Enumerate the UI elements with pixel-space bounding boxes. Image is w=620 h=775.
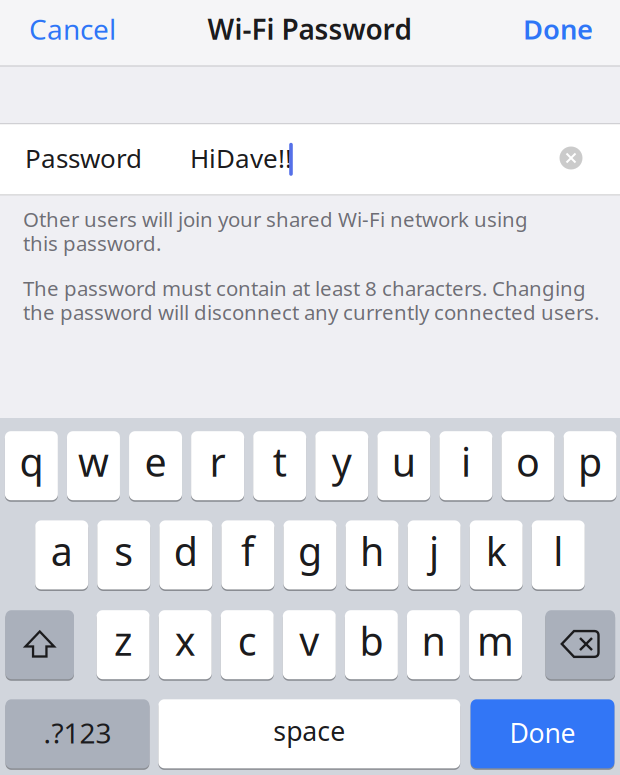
staticText: n <box>421 614 445 667</box>
staticText: c <box>238 614 257 667</box>
button[interactable]: Clear text <box>549 136 593 180</box>
staticText: the password will disconnect any current… <box>23 298 599 326</box>
button[interactable]: c <box>221 610 274 681</box>
staticText: w <box>78 435 109 488</box>
button[interactable]: Cancel <box>29 2 141 56</box>
button[interactable]: x <box>159 610 212 681</box>
button[interactable]: w <box>67 431 120 502</box>
button[interactable]: u <box>377 431 430 502</box>
staticText: Done <box>509 714 575 751</box>
staticText: q <box>19 435 43 488</box>
staticText: this password. <box>23 229 161 257</box>
staticText: d <box>174 524 198 577</box>
staticText: space <box>273 712 345 749</box>
button[interactable]: h <box>346 520 399 591</box>
button[interactable]: f <box>221 520 274 591</box>
staticText: i <box>461 435 471 488</box>
staticText: u <box>392 435 416 488</box>
button[interactable]: Delete <box>545 610 615 681</box>
staticText: x <box>175 614 196 667</box>
button[interactable]: l <box>532 520 585 591</box>
button[interactable]: e <box>129 431 182 502</box>
button[interactable]: z <box>97 610 150 681</box>
button[interactable]: v <box>283 610 336 681</box>
staticText: v <box>299 614 319 667</box>
staticText: k <box>486 524 507 577</box>
button[interactable]: space <box>158 699 460 770</box>
staticText: l <box>553 524 563 577</box>
button[interactable]: Numbers and symbols <box>5 699 149 770</box>
staticText: Other users will join your shared Wi-Fi … <box>23 205 528 233</box>
staticText: Cancel <box>29 10 116 48</box>
button[interactable]: t <box>253 431 306 502</box>
staticText: Done <box>523 10 593 48</box>
button[interactable]: r <box>191 431 244 502</box>
button[interactable]: a <box>35 520 88 591</box>
button[interactable]: j <box>408 520 461 591</box>
staticText: z <box>114 614 132 667</box>
staticText: HiDave!! <box>190 140 292 176</box>
staticText: p <box>578 435 602 488</box>
button[interactable]: Done <box>493 2 593 56</box>
staticText: r <box>210 435 226 488</box>
button[interactable]: m <box>469 610 522 681</box>
button[interactable]: Done <box>471 699 614 770</box>
button[interactable]: b <box>345 610 398 681</box>
button[interactable]: o <box>501 431 554 502</box>
staticText: .?123 <box>43 713 111 752</box>
staticText: b <box>359 614 383 667</box>
button[interactable]: k <box>470 520 523 591</box>
staticText: h <box>360 524 384 577</box>
staticText: t <box>273 435 287 488</box>
staticText: y <box>332 435 352 488</box>
staticText: The password must contain at least 8 cha… <box>23 274 586 302</box>
staticText: g <box>298 524 322 577</box>
staticText: j <box>429 524 439 577</box>
button[interactable]: i <box>439 431 492 502</box>
button[interactable]: p <box>563 431 616 502</box>
staticText: s <box>114 524 133 577</box>
button[interactable]: g <box>283 520 336 591</box>
staticText: m <box>477 614 514 667</box>
staticText: f <box>241 524 255 577</box>
staticText: e <box>144 435 166 488</box>
staticText: Wi-Fi Password <box>207 10 412 48</box>
button[interactable]: Shift <box>5 610 74 681</box>
button[interactable]: d <box>159 520 212 591</box>
staticText: a <box>51 524 73 577</box>
button[interactable]: n <box>407 610 460 681</box>
button[interactable]: s <box>97 520 150 591</box>
staticText: o <box>516 435 540 488</box>
staticText: Password <box>25 140 142 176</box>
button[interactable]: q <box>5 431 58 502</box>
button[interactable]: y <box>315 431 368 502</box>
